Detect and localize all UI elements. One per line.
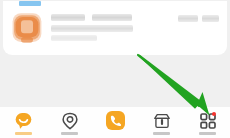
button[interactable]: Khám phá (46, 107, 92, 138)
button[interactable]: Call (92, 107, 138, 138)
button[interactable]: Tiện ích (184, 107, 230, 138)
button[interactable]: Cửa hàng (138, 107, 184, 138)
button[interactable] (3, 1, 227, 55)
button[interactable]: Tin nhắn (0, 107, 46, 138)
